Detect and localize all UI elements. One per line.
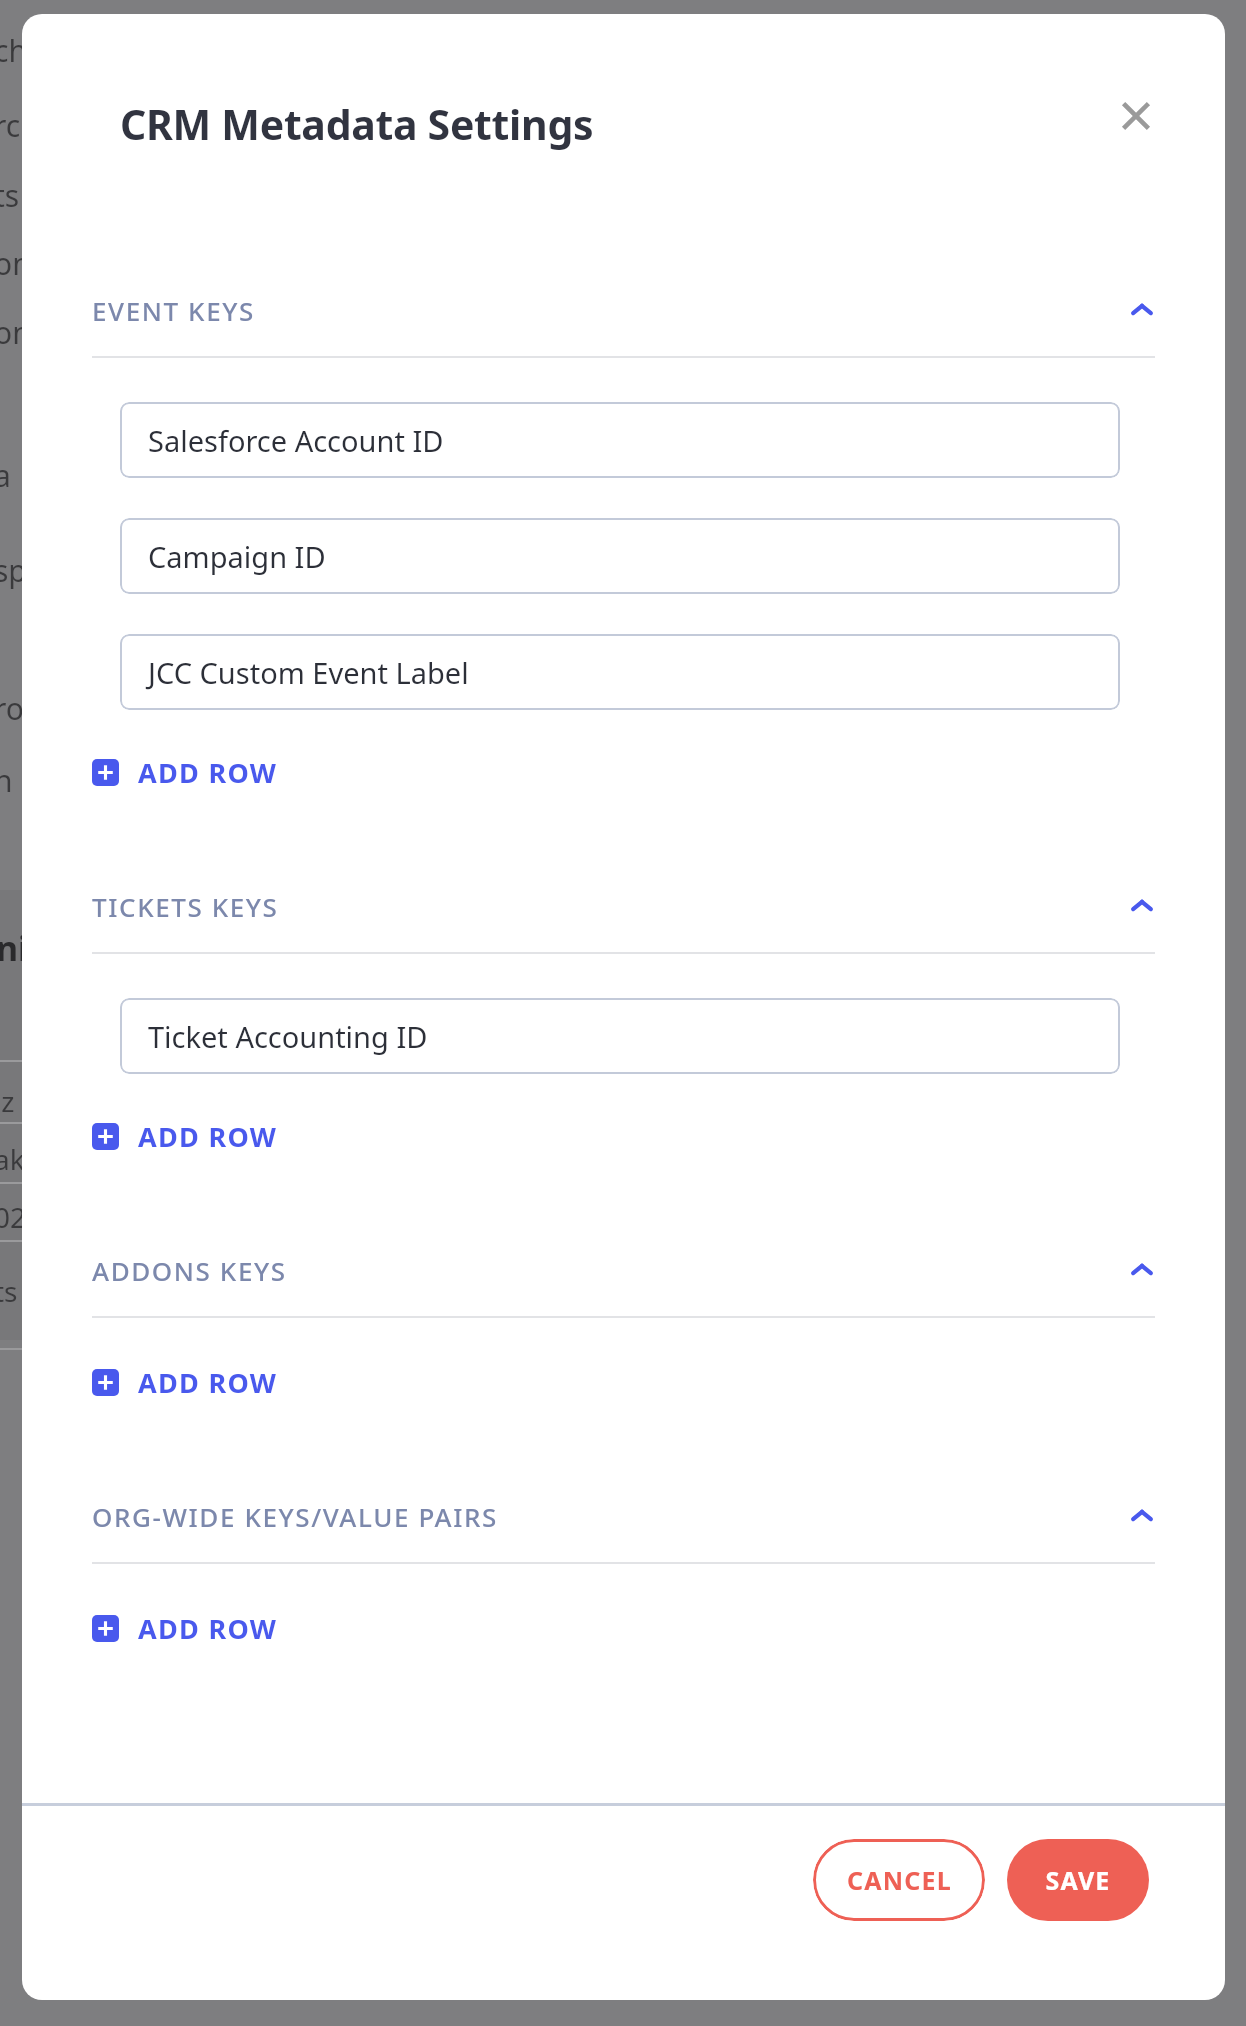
staticText: Campaign ID [148,537,326,576]
staticText: a [0,455,11,496]
button[interactable]: EVENT KEYS [92,284,1155,336]
button[interactable]: ADDONS KEYS [92,1244,1155,1296]
button[interactable]: JCC Custom Event Label [120,634,1120,710]
staticText: ORG-WIDE KEYS/VALUE PAIRS [92,1499,498,1534]
staticText: ADDONS KEYS [92,1253,287,1288]
button[interactable]: SAVE [1007,1839,1149,1921]
staticText: ADD ROW [138,1118,278,1155]
staticText: ak [0,1140,25,1178]
button[interactable]: Close [1104,84,1168,148]
button[interactable]: ADD ROW [92,1602,278,1654]
staticText: Salesforce Account ID [148,421,444,460]
button[interactable]: Campaign ID [120,518,1120,594]
staticText: CRM Metadata Settings [120,96,594,152]
staticText: sp [0,550,27,591]
staticText: EVENT KEYS [92,293,255,328]
staticText: ts [0,1272,18,1310]
button[interactable]: TICKETS KEYS [92,880,1155,932]
staticText: 02 [0,1198,27,1236]
staticText: JCC Custom Event Label [148,653,469,692]
staticText: TICKETS KEYS [92,889,279,924]
staticText: ch [0,30,27,71]
staticText: on [0,243,31,284]
button[interactable]: ADD ROW [92,1356,278,1408]
button[interactable]: Salesforce Account ID [120,402,1120,478]
staticText: CANCEL [847,1863,952,1897]
staticText: ADD ROW [138,754,278,791]
staticText: ADD ROW [138,1610,278,1647]
staticText: ts [0,175,20,216]
staticText: n [0,760,13,801]
button[interactable]: ORG-WIDE KEYS/VALUE PAIRS [92,1490,1155,1542]
staticText: rc [0,105,21,146]
staticText: rot [0,688,35,729]
button[interactable]: ADD ROW [92,1110,278,1162]
staticText: on [0,312,31,353]
staticText: SAVE [1045,1863,1111,1897]
button[interactable]: ADD ROW [92,746,278,798]
staticText: ADD ROW [138,1364,278,1401]
staticText: Ticket Accounting ID [148,1017,428,1056]
button[interactable]: CANCEL [813,1839,985,1921]
button[interactable]: Ticket Accounting ID [120,998,1120,1074]
staticText: iz [0,1082,15,1120]
staticText: ni [0,925,29,971]
